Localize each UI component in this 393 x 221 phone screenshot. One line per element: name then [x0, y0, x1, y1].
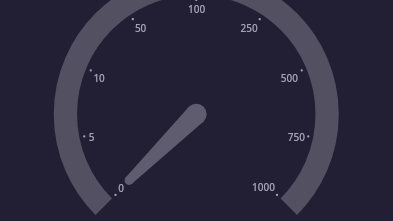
button[interactable]: Speed gauge, 0 — [0, 0, 393, 221]
